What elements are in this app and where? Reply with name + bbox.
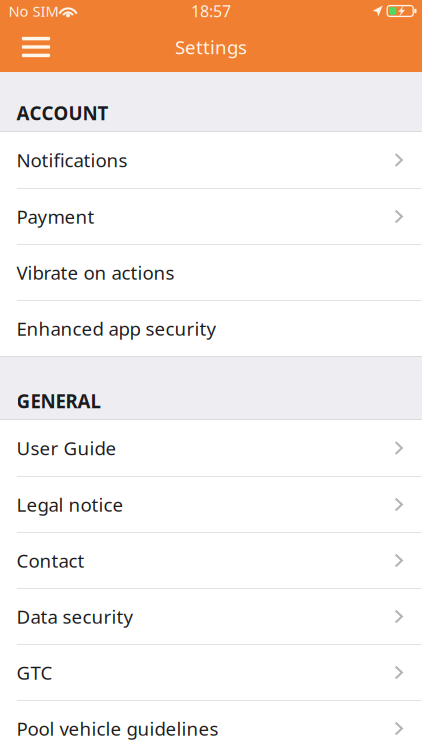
button[interactable]: GTC: [0, 644, 422, 700]
staticText: Settings: [175, 35, 247, 59]
button[interactable]: Contact: [0, 532, 422, 588]
button[interactable]: Menu: [11, 24, 61, 70]
button[interactable]: Notifications: [0, 132, 422, 188]
staticText: Enhanced app security: [16, 316, 216, 341]
staticText: Legal notice: [16, 492, 123, 517]
staticText: 18:57: [191, 0, 231, 22]
staticText: Notifications: [16, 148, 127, 172]
button[interactable]: Vibrate on actions: [0, 244, 422, 300]
staticText: Payment: [16, 204, 94, 229]
button[interactable]: Pool vehicle guidelines: [0, 700, 422, 750]
button[interactable]: Data security: [0, 588, 422, 644]
staticText: Pool vehicle guidelines: [16, 716, 218, 741]
staticText: ACCOUNT: [16, 101, 108, 125]
staticText: User Guide: [16, 436, 116, 460]
staticText: GENERAL: [16, 389, 100, 413]
staticText: Data security: [16, 604, 133, 629]
staticText: No SIM: [8, 1, 58, 21]
button[interactable]: Legal notice: [0, 476, 422, 532]
staticText: GTC: [16, 660, 52, 685]
button[interactable]: Enhanced app security: [0, 300, 422, 356]
button[interactable]: User Guide: [0, 420, 422, 476]
button[interactable]: Payment: [0, 188, 422, 244]
staticText: Vibrate on actions: [16, 260, 174, 285]
staticText: Contact: [16, 548, 84, 573]
